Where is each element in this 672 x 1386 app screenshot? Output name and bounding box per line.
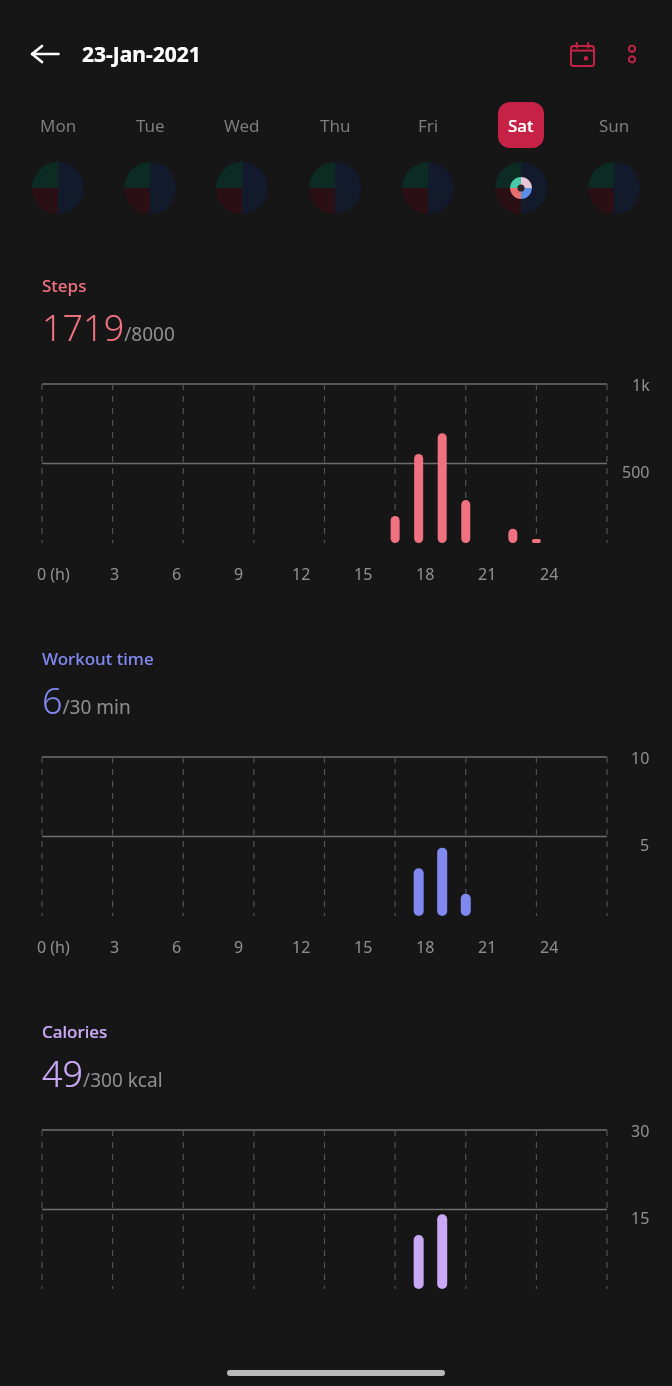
staticText: 21 — [478, 936, 497, 958]
staticText: Workout time — [42, 647, 154, 670]
staticText: 5 — [640, 834, 650, 856]
button[interactable]: More options — [608, 30, 656, 78]
staticText: Calories — [42, 1020, 108, 1043]
button[interactable]: Calendar — [556, 28, 608, 80]
staticText: 500 — [622, 461, 650, 483]
staticText: 12 — [292, 563, 311, 585]
button[interactable]: Sun — [567, 102, 660, 214]
staticText: 0 (h) — [37, 936, 70, 958]
button[interactable]: Fri — [381, 102, 474, 214]
staticText: 21 — [478, 563, 497, 585]
staticText: 15 — [354, 936, 373, 958]
staticText: 9 — [234, 936, 244, 958]
staticText: 10 — [631, 747, 650, 769]
staticText: Sat — [508, 114, 534, 137]
staticText: 3 — [110, 563, 120, 585]
button[interactable]: Tue — [104, 102, 196, 214]
staticText: 23-Jan-2021 — [82, 40, 201, 69]
staticText: 18 — [416, 936, 435, 958]
staticText: Sun — [599, 114, 630, 137]
staticText: 12 — [292, 936, 311, 958]
staticText: 6 — [172, 563, 182, 585]
button[interactable]: Sat — [474, 102, 567, 214]
staticText: 1719/8000 — [42, 303, 175, 352]
staticText: Tue — [136, 114, 165, 137]
staticText: 49/300 kcal — [42, 1049, 163, 1098]
staticText: 9 — [234, 563, 244, 585]
staticText: 24 — [540, 936, 559, 958]
staticText: 6 — [172, 936, 182, 958]
staticText: 15 — [631, 1207, 650, 1229]
staticText: 24 — [540, 563, 559, 585]
button[interactable]: Mon — [12, 102, 104, 214]
staticText: 18 — [416, 563, 435, 585]
staticText: 1k — [632, 374, 650, 396]
staticText: Wed — [224, 114, 260, 137]
button[interactable]: Wed — [196, 102, 288, 214]
staticText: 0 (h) — [37, 563, 70, 585]
button[interactable]: Back — [18, 27, 72, 81]
staticText: Mon — [40, 114, 77, 137]
staticText: Thu — [320, 114, 351, 137]
staticText: Fri — [418, 114, 439, 137]
staticText: 6/30 min — [42, 676, 131, 725]
staticText: 30 — [631, 1120, 650, 1142]
staticText: 15 — [354, 563, 373, 585]
staticText: 3 — [110, 936, 120, 958]
staticText: Steps — [42, 274, 87, 297]
button[interactable]: Thu — [288, 102, 381, 214]
